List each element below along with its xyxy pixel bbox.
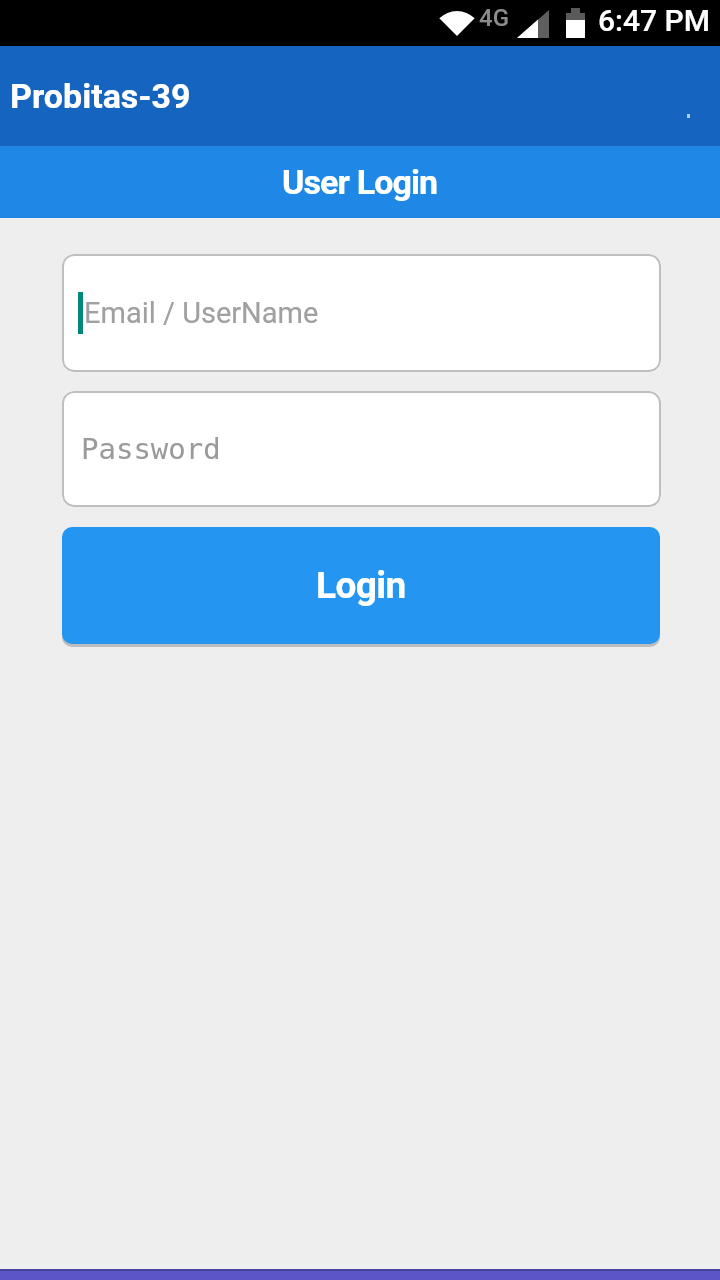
- staticText: 4G: [479, 4, 509, 32]
- staticText: User Login: [282, 162, 438, 202]
- staticText: Probitas-39: [10, 76, 191, 116]
- staticText: 6:47 PM: [598, 3, 711, 38]
- staticText: Login: [316, 564, 406, 607]
- staticText: Password: [81, 432, 221, 466]
- staticText: Email / UserName: [84, 296, 319, 330]
